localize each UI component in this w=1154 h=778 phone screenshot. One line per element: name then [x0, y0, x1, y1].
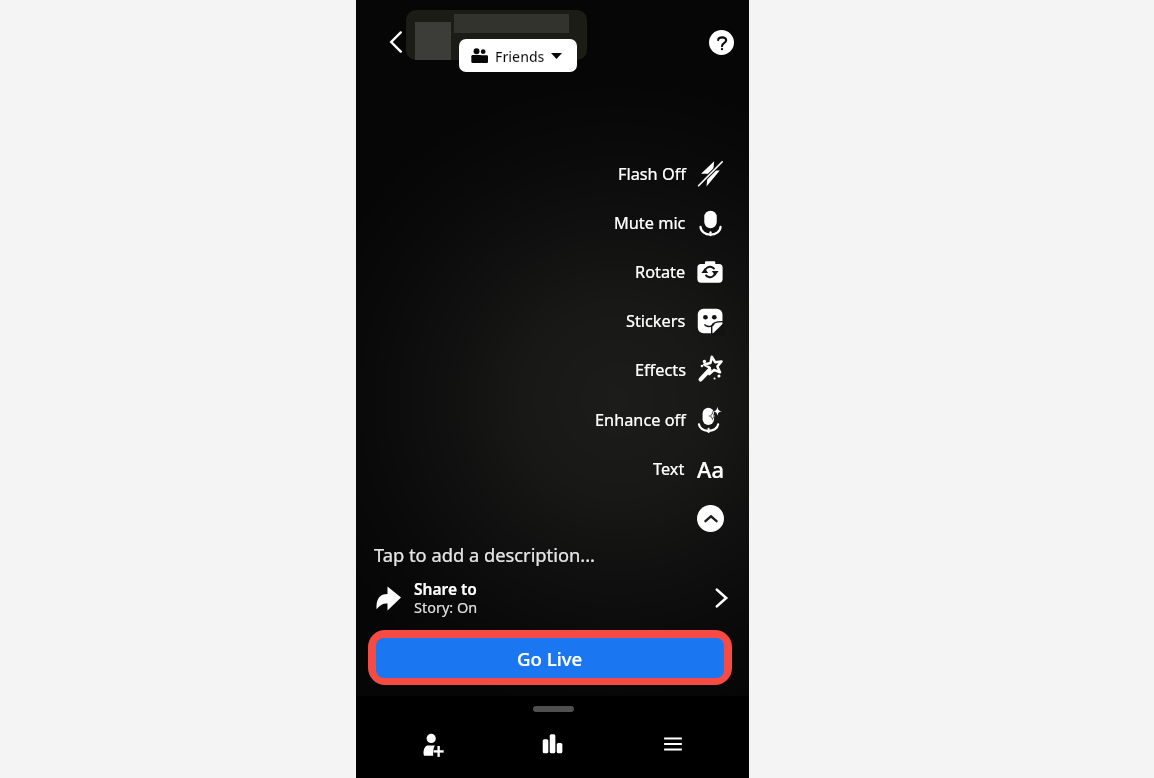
- button[interactable]: Menu: [645, 716, 701, 772]
- button[interactable]: Effects: [356, 345, 723, 394]
- staticText: Rotate: [635, 261, 686, 283]
- button[interactable]: Add people: [406, 716, 462, 772]
- button[interactable]: Stickers: [356, 296, 723, 345]
- staticText: Flash Off: [618, 163, 686, 185]
- button[interactable]: Insights: [525, 716, 581, 772]
- button[interactable]: Text: [356, 444, 724, 493]
- staticText: Text: [653, 458, 685, 480]
- button[interactable]: Enhance off: [356, 395, 723, 444]
- staticText: Mute mic: [614, 212, 686, 234]
- button[interactable]: Help: [709, 30, 734, 55]
- button[interactable]: Flash Off: [356, 149, 723, 198]
- staticText: Aa: [697, 454, 724, 484]
- staticText: Effects: [635, 359, 686, 381]
- button[interactable]: Back: [378, 24, 414, 60]
- button[interactable]: Expand options: [693, 501, 727, 535]
- button[interactable]: Share to: [364, 576, 741, 620]
- staticText: Share to: [414, 578, 477, 599]
- button[interactable]: Friends: [459, 39, 577, 72]
- staticText: Stickers: [626, 310, 686, 332]
- button[interactable]: Go Live: [376, 638, 724, 678]
- button[interactable]: Mute mic: [356, 198, 723, 247]
- staticText: Enhance off: [595, 409, 686, 431]
- button[interactable]: Tap to add a description...: [374, 538, 692, 570]
- button[interactable]: Rotate: [356, 247, 723, 296]
- staticText: Go Live: [517, 646, 583, 671]
- staticText: Tap to add a description...: [374, 542, 596, 567]
- staticText: Friends: [495, 47, 545, 66]
- staticText: Story: On: [414, 597, 478, 617]
